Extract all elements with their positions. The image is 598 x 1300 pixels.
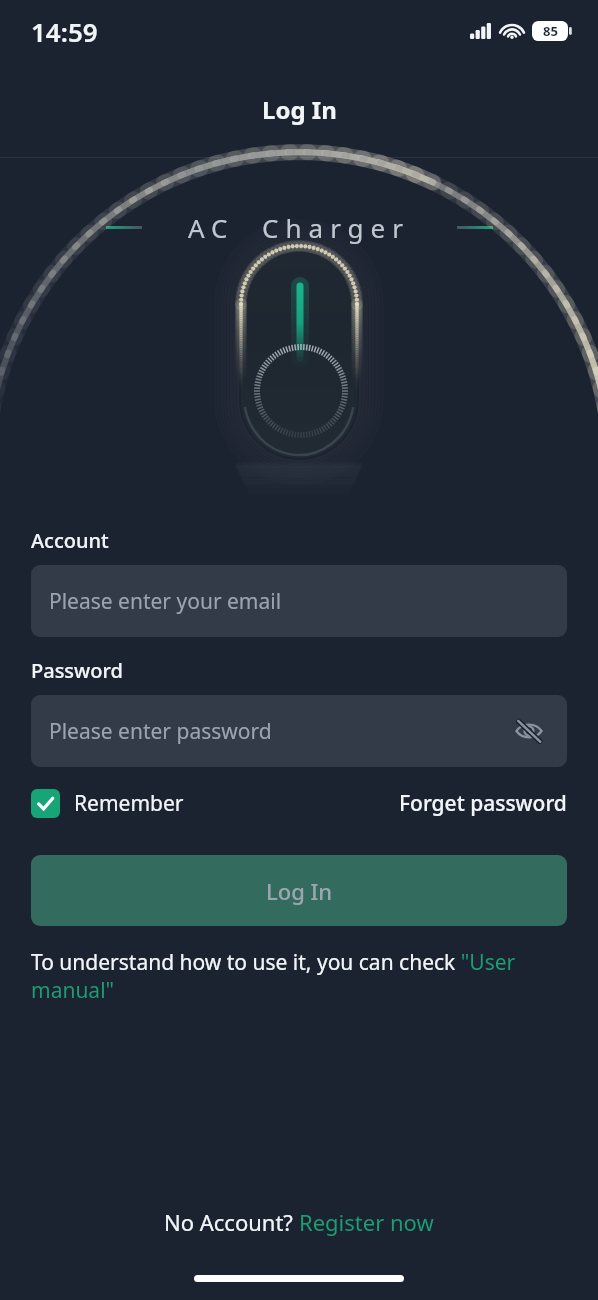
button[interactable]: Please enter password [31,695,567,767]
staticText: 85 [543,22,558,40]
staticText: Remember [74,789,184,818]
button[interactable]: No Account? [164,1207,434,1237]
staticText: Please enter password [49,717,272,746]
staticText: Please enter your email [49,587,282,616]
button[interactable]: Show password [509,711,549,751]
staticText: Password [31,657,123,684]
staticText: 14:59 [31,14,98,49]
button[interactable]: Log In [31,855,567,926]
staticText: Log In [266,876,333,906]
staticText: AC Charger [188,210,411,245]
button[interactable]: Forget password [399,789,567,818]
button[interactable]: Remember [31,789,184,818]
staticText: Account [31,527,109,554]
button[interactable]: To understand how to use it, you can che… [31,948,567,1004]
staticText: To understand how to use it, you can che… [31,948,567,1004]
staticText: Register now [299,1207,434,1237]
staticText: Forget password [399,789,567,818]
staticText: No Account? [164,1207,299,1237]
button[interactable]: Please enter your email [31,565,567,637]
staticText: Log In [262,93,337,126]
